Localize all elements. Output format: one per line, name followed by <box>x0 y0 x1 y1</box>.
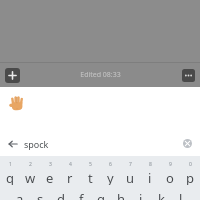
button[interactable]: s <box>30 190 51 200</box>
button[interactable]: j <box>131 190 151 200</box>
staticText: o <box>166 169 174 185</box>
staticText: a <box>16 190 24 200</box>
staticText: 4 <box>69 161 72 168</box>
button[interactable]: 3 <box>40 161 60 185</box>
button[interactable]: l <box>171 190 191 200</box>
staticText: 1 <box>9 161 12 168</box>
staticText: 7 <box>129 161 132 168</box>
staticText: k <box>158 190 165 200</box>
button[interactable]: f <box>71 190 91 200</box>
staticText: l <box>179 190 183 200</box>
staticText: 5 <box>89 161 92 168</box>
button[interactable]: k <box>151 190 171 200</box>
button[interactable]: Back <box>4 135 21 152</box>
staticText: y <box>107 169 114 185</box>
staticText: spock <box>24 138 49 150</box>
staticText: 0 <box>189 161 192 168</box>
button[interactable]: d <box>51 190 71 200</box>
staticText: g <box>97 190 105 200</box>
staticText: s <box>37 190 44 200</box>
button[interactable]: Clear search <box>180 136 195 151</box>
staticText: 6 <box>109 161 112 168</box>
button[interactable]: More options <box>182 69 195 82</box>
button[interactable]: 0 <box>180 161 200 185</box>
staticText: r <box>67 169 73 185</box>
staticText: 8 <box>149 161 152 168</box>
button[interactable]: Vulcan salute emoji <box>6 91 28 113</box>
button[interactable]: 6 <box>100 161 120 185</box>
staticText: f <box>79 190 84 200</box>
button[interactable]: 8 <box>140 161 160 185</box>
button[interactable]: 5 <box>80 161 100 185</box>
staticText: 2 <box>29 161 32 168</box>
button[interactable]: Add <box>5 68 20 83</box>
button[interactable]: 7 <box>120 161 140 185</box>
staticText: t <box>88 169 93 185</box>
staticText: w <box>25 169 36 185</box>
button[interactable]: 1 <box>0 161 20 185</box>
staticText: d <box>57 190 65 200</box>
button[interactable]: 4 <box>60 161 80 185</box>
staticText: Edited 08:33 <box>80 70 121 80</box>
staticText: u <box>126 169 135 185</box>
staticText: j <box>139 190 143 200</box>
staticText: 3 <box>49 161 52 168</box>
button[interactable]: 9 <box>160 161 180 185</box>
button[interactable]: g <box>91 190 111 200</box>
staticText: 9 <box>169 161 172 168</box>
staticText: q <box>6 169 14 185</box>
button[interactable]: a <box>9 190 30 200</box>
staticText: p <box>186 169 194 185</box>
staticText: e <box>46 169 54 185</box>
button[interactable]: 2 <box>20 161 40 185</box>
staticText: h <box>117 190 126 200</box>
button[interactable]: h <box>111 190 131 200</box>
staticText: i <box>148 169 152 185</box>
